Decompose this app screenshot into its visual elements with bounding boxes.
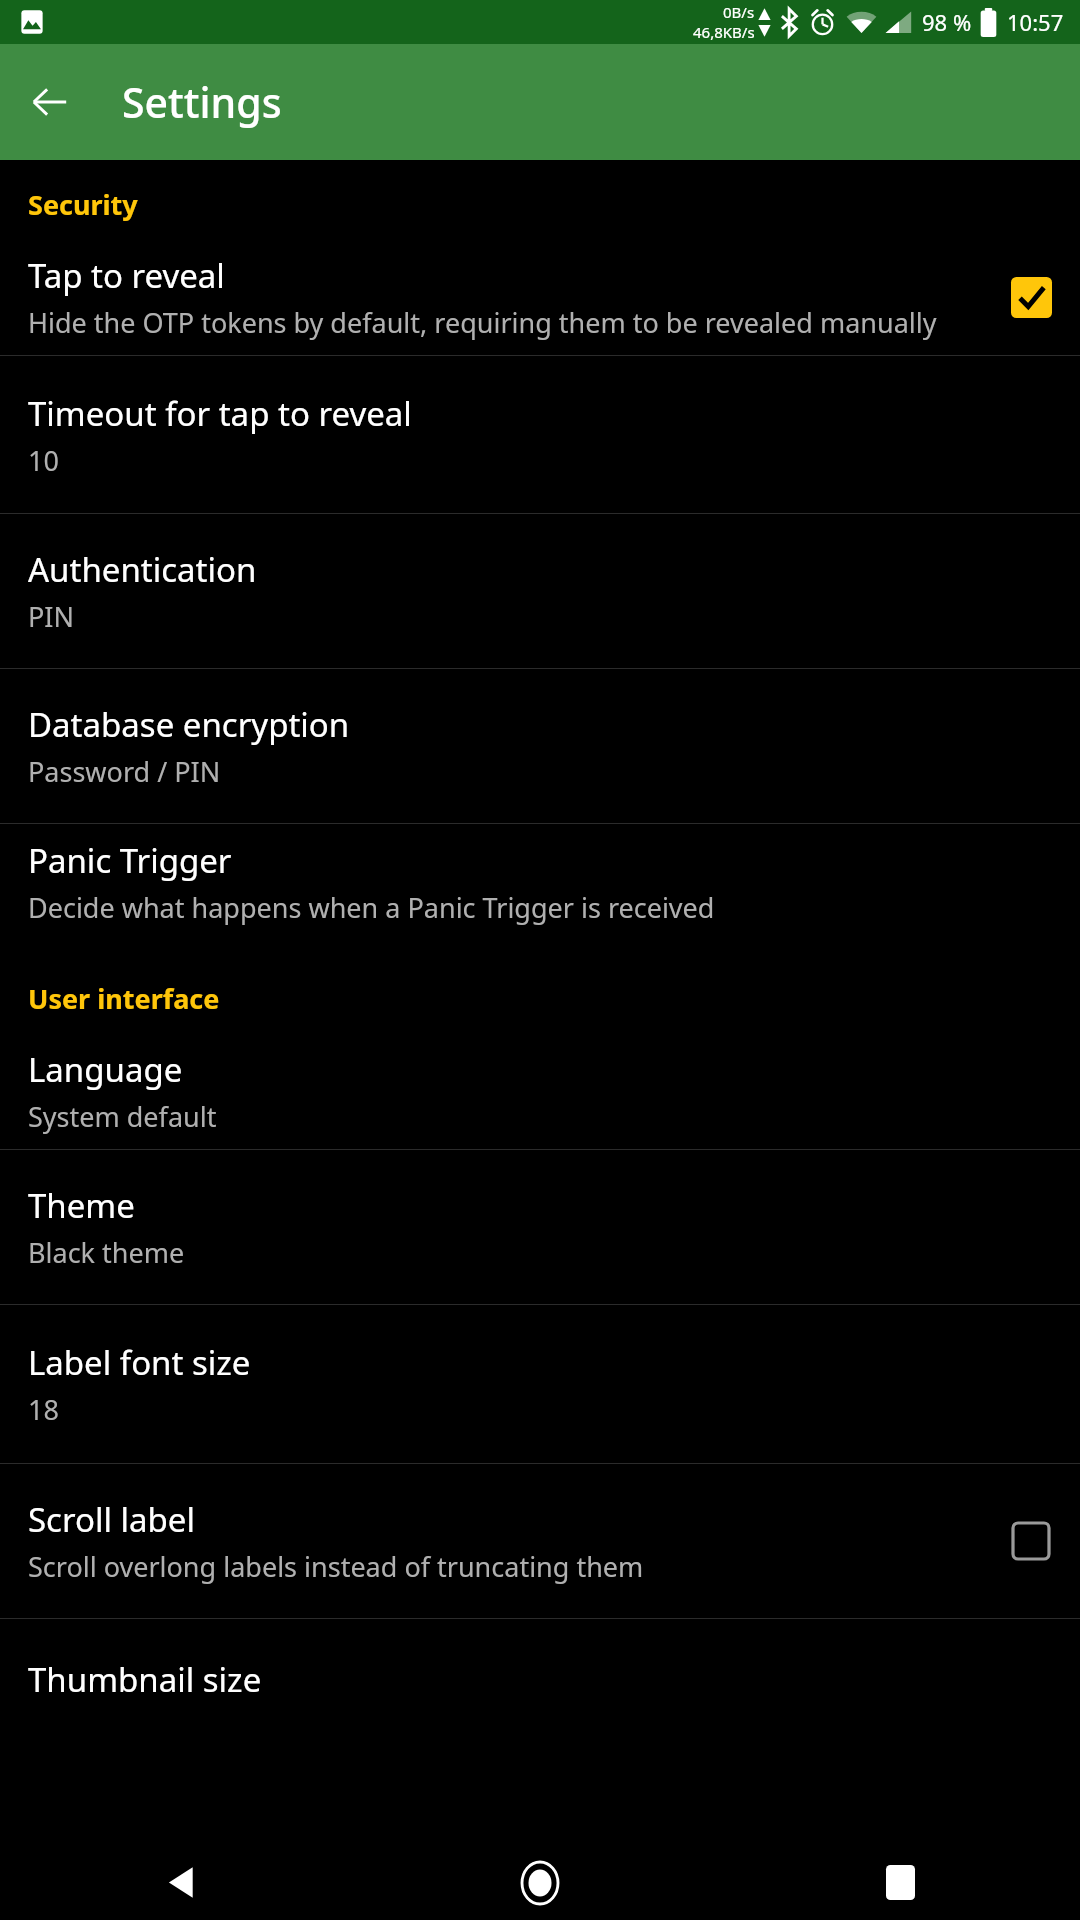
staticText: 0B/s: [723, 2, 755, 22]
staticText: Timeout for tap to reveal: [28, 391, 412, 436]
staticText: System default: [28, 1098, 217, 1135]
button[interactable]: Thumbnail size: [0, 1619, 1080, 1739]
staticText: 18: [28, 1391, 59, 1428]
staticText: Security: [28, 186, 138, 223]
staticText: Language: [28, 1047, 183, 1092]
button[interactable]: Scroll label: [0, 1464, 1080, 1618]
button[interactable]: Theme: [0, 1150, 1080, 1304]
button[interactable]: Panic Trigger: [0, 824, 1080, 940]
staticText: Tap to reveal: [28, 253, 225, 298]
button[interactable]: Label font size: [0, 1305, 1080, 1463]
staticText: Thumbnail size: [28, 1657, 262, 1702]
staticText: Scroll overlong labels instead of trunca…: [28, 1548, 644, 1585]
button[interactable]: Tap to reveal checkbox, checked: [1004, 270, 1058, 324]
staticText: Settings: [122, 74, 282, 130]
staticText: Password / PIN: [28, 753, 221, 790]
button[interactable]: Timeout for tap to reveal: [0, 356, 1080, 513]
staticText: 46,8KB/s: [693, 22, 755, 42]
button[interactable]: Authentication: [0, 514, 1080, 668]
staticText: 10: [28, 442, 59, 479]
button[interactable]: Recent apps: [720, 1845, 1080, 1920]
staticText: Hide the OTP tokens by default, requirin…: [28, 304, 937, 341]
staticText: Theme: [28, 1183, 135, 1228]
staticText: Authentication: [28, 547, 257, 592]
staticText: 98 %: [922, 7, 972, 37]
staticText: Label font size: [28, 1340, 251, 1385]
staticText: PIN: [28, 598, 75, 635]
button[interactable]: Database encryption: [0, 669, 1080, 823]
button[interactable]: Back: [0, 1845, 360, 1920]
staticText: Scroll label: [28, 1497, 195, 1542]
button[interactable]: Tap to reveal: [0, 239, 1080, 355]
staticText: Decide what happens when a Panic Trigger…: [28, 889, 715, 926]
button[interactable]: Home: [360, 1845, 720, 1920]
button[interactable]: Scroll label checkbox, unchecked: [1004, 1514, 1058, 1568]
staticText: Black theme: [28, 1234, 185, 1271]
staticText: User interface: [28, 980, 220, 1017]
staticText: 10:57: [1007, 7, 1064, 37]
button[interactable]: Language: [0, 1033, 1080, 1149]
staticText: Panic Trigger: [28, 838, 232, 883]
button[interactable]: Navigate up: [18, 70, 82, 134]
staticText: Database encryption: [28, 702, 350, 747]
